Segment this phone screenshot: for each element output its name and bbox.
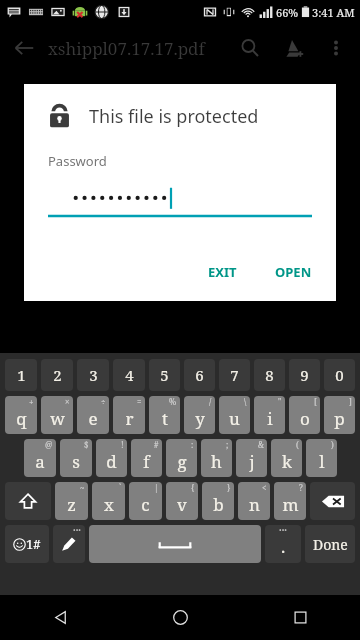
button[interactable]: 5 bbox=[149, 359, 180, 391]
button[interactable]: Space bbox=[89, 525, 261, 563]
staticText: h bbox=[211, 450, 222, 473]
staticText: EXIT bbox=[208, 263, 237, 281]
button[interactable]: ) bbox=[306, 439, 337, 477]
staticText: 7 bbox=[230, 365, 239, 385]
button[interactable]: EXIT bbox=[194, 253, 251, 291]
staticText: ] bbox=[349, 396, 352, 407]
button[interactable]: ; bbox=[201, 439, 232, 477]
button[interactable]: More options bbox=[316, 28, 356, 68]
button[interactable]: Period bbox=[265, 525, 301, 563]
button[interactable]: × bbox=[41, 396, 73, 434]
staticText: { bbox=[191, 482, 195, 493]
staticText: % bbox=[169, 396, 177, 407]
button[interactable]: # bbox=[131, 439, 162, 477]
button[interactable]: OPEN bbox=[261, 253, 326, 291]
staticText: w bbox=[50, 407, 65, 430]
button[interactable]: & bbox=[236, 439, 267, 477]
button[interactable]: 1 bbox=[5, 359, 37, 391]
staticText: \ bbox=[244, 396, 247, 407]
button[interactable]: 6 bbox=[184, 359, 215, 391]
button[interactable]: | bbox=[129, 482, 162, 520]
staticText: 2 bbox=[53, 365, 62, 385]
button[interactable]: Save to Drive bbox=[272, 26, 316, 70]
button[interactable]: Done bbox=[305, 525, 355, 563]
button[interactable]: @ bbox=[24, 439, 56, 477]
button[interactable]: 3 bbox=[77, 359, 109, 391]
staticText: Done bbox=[313, 535, 348, 554]
staticText: ••• bbox=[279, 526, 287, 536]
button[interactable]: % bbox=[149, 396, 180, 434]
staticText: 3:41 AM bbox=[312, 5, 355, 20]
staticText: e bbox=[88, 407, 98, 430]
staticText: r bbox=[125, 407, 134, 430]
button[interactable]: ? bbox=[274, 482, 306, 520]
button[interactable]: 4 bbox=[113, 359, 145, 391]
staticText: # bbox=[154, 439, 159, 450]
button[interactable]: < bbox=[238, 482, 270, 520]
button[interactable]: Search bbox=[228, 26, 272, 70]
button[interactable]: : bbox=[166, 439, 197, 477]
staticText: . bbox=[281, 535, 286, 558]
staticText: 6 bbox=[195, 365, 204, 385]
button[interactable]: ] bbox=[324, 396, 355, 434]
staticText: 66% bbox=[276, 5, 299, 20]
button[interactable]: ÷ bbox=[77, 396, 109, 434]
staticText: a bbox=[35, 450, 45, 473]
staticText: 9 bbox=[300, 365, 309, 385]
button[interactable]: 2 bbox=[41, 359, 73, 391]
button[interactable]: / bbox=[184, 396, 215, 434]
staticText: x bbox=[104, 493, 114, 516]
button[interactable]: + bbox=[5, 396, 37, 434]
staticText: ; bbox=[226, 439, 229, 450]
button[interactable]: 9 bbox=[289, 359, 320, 391]
button[interactable]: ` bbox=[92, 482, 125, 520]
staticText: | bbox=[154, 482, 159, 493]
button[interactable]: 8 bbox=[254, 359, 285, 391]
staticText: = bbox=[137, 396, 142, 407]
button[interactable]: 7 bbox=[219, 359, 250, 391]
staticText: z bbox=[67, 493, 76, 516]
staticText: ••• bbox=[73, 526, 81, 536]
staticText: i bbox=[267, 407, 273, 430]
button[interactable]: [ bbox=[289, 396, 320, 434]
staticText: m bbox=[282, 493, 299, 516]
button[interactable]: } bbox=[202, 482, 234, 520]
button[interactable]: ! bbox=[96, 439, 127, 477]
staticText: This file is protected bbox=[89, 104, 259, 129]
staticText: 3 bbox=[89, 365, 98, 385]
button[interactable]: ( bbox=[271, 439, 302, 477]
staticText: / bbox=[209, 396, 212, 407]
button[interactable]: Back bbox=[0, 595, 120, 640]
staticText: p bbox=[334, 407, 345, 430]
button[interactable]: Home bbox=[120, 595, 240, 640]
button[interactable]: $ bbox=[60, 439, 92, 477]
staticText: s bbox=[72, 450, 80, 473]
button[interactable]: = bbox=[113, 396, 145, 434]
staticText: 5 bbox=[160, 365, 169, 385]
button[interactable]: ~ bbox=[55, 482, 88, 520]
staticText: + bbox=[29, 396, 34, 407]
button[interactable]: 0 bbox=[324, 359, 355, 391]
staticText: Password bbox=[48, 152, 107, 170]
button[interactable]: " bbox=[254, 396, 285, 434]
button[interactable]: { bbox=[166, 482, 198, 520]
button[interactable]: Handwriting bbox=[53, 525, 85, 563]
button[interactable]: \ bbox=[219, 396, 250, 434]
staticText: 4 bbox=[125, 365, 134, 385]
staticText: [ bbox=[314, 396, 317, 407]
staticText: ` bbox=[119, 482, 122, 493]
staticText: b bbox=[213, 493, 224, 516]
staticText: } bbox=[227, 482, 231, 493]
staticText: j bbox=[249, 450, 255, 473]
staticText: & bbox=[258, 439, 264, 450]
button[interactable]: Back bbox=[0, 24, 48, 72]
staticText: t bbox=[162, 407, 168, 430]
button[interactable]: Backspace bbox=[310, 482, 355, 520]
staticText: : bbox=[191, 439, 194, 450]
button[interactable]: Symbols and emoji bbox=[5, 525, 49, 563]
staticText: ! bbox=[121, 439, 124, 450]
staticText: × bbox=[65, 396, 70, 407]
button[interactable]: Recent apps bbox=[240, 595, 360, 640]
button[interactable]: Shift bbox=[5, 482, 51, 520]
staticText: ( bbox=[296, 439, 299, 450]
